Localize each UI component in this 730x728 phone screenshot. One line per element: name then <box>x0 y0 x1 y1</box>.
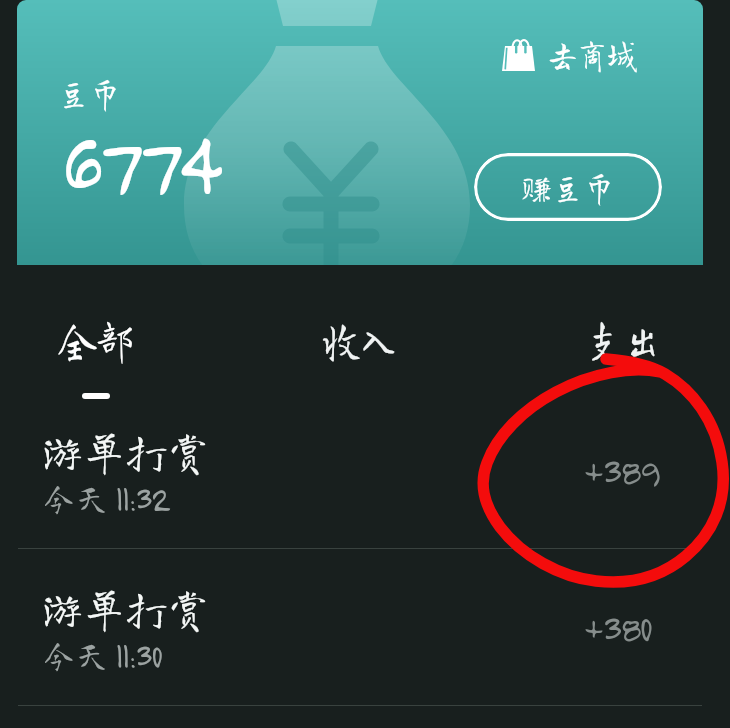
button[interactable]: 赚豆币 <box>474 153 662 221</box>
staticText: 今天 <box>42 479 110 515</box>
staticText: +380 <box>583 603 652 651</box>
staticText: 去商城 <box>548 37 637 71</box>
staticText: 全部 <box>58 316 134 363</box>
staticText: 收入 <box>322 316 398 363</box>
staticText: 豆币 <box>58 76 121 110</box>
staticText: +389 <box>583 446 659 494</box>
staticText: 赚豆币 <box>521 170 615 204</box>
button[interactable]: 全部 <box>0 305 192 405</box>
button[interactable]: 游单打赏 <box>0 577 730 728</box>
button[interactable]: 支出 <box>501 305 730 405</box>
staticText: 游单打赏 <box>42 585 210 630</box>
button[interactable]: 去商城 <box>497 28 654 80</box>
staticText: 11:32 <box>115 477 169 519</box>
staticText: 游单打赏 <box>42 428 210 473</box>
staticText: 6774 <box>62 105 217 217</box>
staticText: 支出 <box>586 316 662 363</box>
button[interactable]: 游单打赏 <box>0 420 730 577</box>
staticText: 今天 <box>42 636 110 672</box>
button[interactable]: 收入 <box>230 305 489 405</box>
staticText: 11:30 <box>115 634 162 676</box>
